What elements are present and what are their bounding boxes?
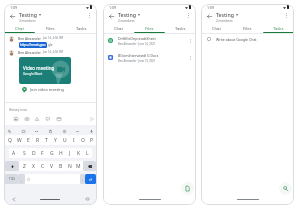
button[interactable]: L — [83, 148, 92, 158]
button[interactable]: M — [74, 161, 83, 171]
button[interactable]: D — [29, 148, 38, 158]
button[interactable]: More options — [282, 11, 291, 20]
staticText: R — [36, 137, 40, 144]
button[interactable]: Video meeting — [19, 57, 71, 84]
button[interactable]: Navigate back — [11, 196, 17, 202]
button[interactable]: New file — [181, 182, 194, 195]
button[interactable]: Calendar — [54, 114, 63, 123]
button[interactable]: Chat — [4, 25, 35, 33]
staticText: Jun 14, 4:56 PM — [43, 36, 64, 40]
button[interactable]: More — [186, 37, 194, 45]
button[interactable]: Backspace — [83, 161, 96, 171]
button[interactable]: New task — [279, 182, 292, 195]
button[interactable]: K — [74, 148, 83, 158]
button[interactable]: Tasks — [66, 25, 97, 33]
staticText: Tasks — [76, 26, 87, 32]
staticText: Tasks — [273, 26, 284, 32]
button[interactable]: Drive file — [32, 114, 41, 123]
staticText: P — [90, 137, 94, 144]
button[interactable]: Join video meeting — [22, 87, 64, 92]
button[interactable]: Clipboard — [47, 128, 54, 135]
button[interactable]: Space — [25, 174, 80, 184]
staticText: Testing — [216, 11, 234, 18]
button[interactable]: Y — [51, 135, 60, 145]
staticText: Chat — [15, 26, 24, 32]
button[interactable]: Search — [6, 128, 13, 135]
staticText: E — [27, 137, 30, 144]
button[interactable]: S — [19, 148, 29, 158]
button[interactable]: T — [42, 135, 51, 145]
button[interactable]: N — [65, 161, 74, 171]
button[interactable]: Q — [5, 135, 15, 145]
button[interactable]: Tasks — [165, 25, 196, 33]
button[interactable]: Chat — [201, 25, 232, 33]
button[interactable]: comma — [18, 174, 25, 184]
button[interactable]: period — [80, 174, 85, 184]
staticText: U — [63, 137, 67, 144]
staticText: Z — [23, 163, 26, 170]
button[interactable]: Files — [35, 25, 66, 33]
button[interactable]: R — [33, 135, 42, 145]
button[interactable]: Back — [7, 11, 18, 22]
button[interactable]: More — [186, 54, 194, 62]
staticText: Testing — [19, 11, 37, 18]
button[interactable]: F — [38, 148, 47, 158]
button[interactable]: G — [47, 148, 56, 158]
button[interactable]: Send — [87, 114, 96, 123]
staticText: 2 members — [118, 19, 135, 23]
button[interactable]: I — [69, 135, 78, 145]
button[interactable]: W — [15, 135, 24, 145]
button[interactable]: O — [78, 135, 87, 145]
staticText: Chat — [212, 26, 221, 32]
button[interactable]: Tasks — [263, 25, 294, 33]
staticText: gle — [48, 43, 53, 47]
staticText: History is on — [9, 108, 28, 112]
button[interactable]: More options — [85, 11, 94, 20]
button[interactable]: Shift — [5, 161, 19, 171]
button[interactable]: U — [60, 135, 69, 145]
button[interactable]: Enter — [85, 174, 96, 184]
button[interactable]: Add photo — [11, 114, 20, 123]
staticText: 1:09 — [207, 5, 215, 10]
staticText: 2 members — [216, 19, 233, 23]
staticText: Ben Alexander · June 13, 2021 — [118, 59, 156, 63]
button[interactable]: C — [38, 161, 47, 171]
button[interactable]: Take photo — [22, 114, 31, 123]
button[interactable]: GIF — [33, 128, 40, 135]
staticText: W — [17, 137, 22, 144]
staticText: F — [41, 150, 44, 157]
staticText: N — [68, 163, 72, 170]
staticText: Jun 14, 4:56 PM — [43, 50, 64, 54]
button[interactable]: Chat — [103, 25, 134, 33]
button[interactable]: A — [9, 148, 19, 158]
button[interactable]: Files — [134, 25, 165, 33]
staticText: T — [45, 137, 48, 144]
staticText: . — [82, 177, 83, 182]
button[interactable]: BOomInterview# G Docs — [103, 51, 196, 64]
button[interactable]: P — [87, 135, 96, 145]
button[interactable]: Theme — [20, 128, 27, 135]
button[interactable]: B — [56, 161, 65, 171]
button[interactable]: More options — [184, 11, 193, 20]
button[interactable]: Hide keyboard — [84, 196, 90, 202]
button[interactable]: V — [47, 161, 56, 171]
staticText: 2 members — [19, 19, 36, 23]
staticText: BOomInterview# G Docs — [118, 53, 159, 58]
button[interactable]: H — [56, 148, 65, 158]
button[interactable]: Sticker — [43, 114, 52, 123]
button[interactable]: Z — [19, 161, 29, 171]
staticText: B — [59, 163, 63, 170]
button[interactable]: DriftfileOnpreadsSheet — [103, 34, 196, 47]
button[interactable]: ?123 — [5, 174, 18, 184]
button[interactable]: Voice input — [88, 128, 95, 135]
button[interactable]: Write about Google Chat — [201, 33, 294, 45]
button[interactable]: X — [29, 161, 38, 171]
button[interactable]: Back — [106, 11, 117, 22]
button[interactable]: Back — [204, 11, 215, 22]
button[interactable]: J — [65, 148, 74, 158]
button[interactable]: Settings — [61, 128, 68, 135]
button[interactable]: E — [24, 135, 33, 145]
button[interactable]: More — [74, 128, 81, 135]
staticText: Q — [8, 137, 12, 144]
button[interactable]: Files — [232, 25, 263, 33]
